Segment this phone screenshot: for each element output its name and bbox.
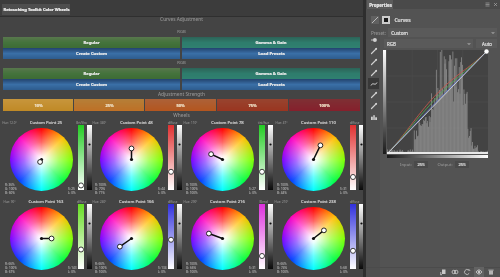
button[interactable]: Hue: 47° bbox=[272, 118, 363, 197]
staticText: G: 74% bbox=[277, 266, 287, 270]
staticText: Hue: 210° bbox=[273, 200, 290, 204]
button[interactable]: Retouching Toolkit Color Wheels bbox=[2, 4, 70, 15]
staticText: G: 66% bbox=[186, 266, 196, 270]
staticText: Custom bbox=[391, 30, 408, 36]
button[interactable]: 75% bbox=[217, 99, 288, 111]
staticText: diffuse bbox=[347, 200, 362, 204]
staticText: 25% bbox=[105, 103, 114, 108]
staticText: diffuse bbox=[347, 121, 362, 125]
button[interactable]: 10% bbox=[3, 99, 73, 111]
button[interactable]: Hue: 210° bbox=[272, 197, 363, 277]
staticText: R: 100% bbox=[186, 183, 198, 187]
button[interactable]: Load Presets bbox=[182, 79, 360, 90]
button[interactable]: Hue: 240° bbox=[90, 197, 181, 277]
staticText: B: 60% bbox=[5, 191, 15, 195]
staticText: Regular bbox=[83, 40, 100, 46]
staticText: 75% bbox=[248, 103, 257, 108]
staticText: Custom Point 25 bbox=[18, 120, 74, 126]
staticText: G: 100% bbox=[5, 266, 17, 270]
staticText: Wheels bbox=[0, 112, 363, 119]
staticText: G: 100% bbox=[5, 187, 17, 191]
staticText: Preset: bbox=[371, 30, 388, 36]
staticText: S: 25 bbox=[68, 187, 75, 191]
staticText: RGB bbox=[0, 29, 363, 35]
staticText: Hue: 90° bbox=[1, 200, 18, 204]
staticText: Regular bbox=[83, 71, 100, 77]
button[interactable]: Create Custom bbox=[3, 48, 180, 59]
button[interactable]: Histogram bbox=[368, 111, 379, 122]
staticText: Custom Point 166 bbox=[108, 199, 165, 205]
button[interactable]: Grid bbox=[368, 100, 379, 111]
staticText: 255 bbox=[458, 162, 466, 168]
button[interactable]: Auto bbox=[476, 39, 497, 48]
staticText: tint/hue bbox=[256, 121, 271, 125]
button[interactable]: White point bbox=[368, 56, 379, 67]
staticText: RGB bbox=[387, 41, 396, 47]
staticText: Custom Point 163 bbox=[18, 199, 74, 205]
button[interactable]: Hue: 110° bbox=[181, 118, 272, 197]
staticText: Hue: 12.0° bbox=[1, 121, 18, 125]
staticText: R: 66% bbox=[277, 262, 287, 266]
button[interactable]: Regular bbox=[3, 37, 180, 48]
staticText: R: 100% bbox=[95, 183, 107, 187]
staticText: L: 0% bbox=[249, 270, 257, 274]
staticText: 10% bbox=[34, 103, 43, 108]
staticText: B: 100% bbox=[186, 270, 198, 274]
button[interactable]: Hue: 340° bbox=[90, 118, 181, 197]
staticText: 100% bbox=[319, 103, 330, 108]
button[interactable]: Hue: 90° bbox=[0, 197, 90, 277]
button[interactable]: Gamma & Gain bbox=[182, 37, 360, 48]
button[interactable]: Hue: 12.0° bbox=[0, 118, 90, 197]
button[interactable]: 25% bbox=[74, 99, 144, 111]
staticText: R: 36% bbox=[5, 183, 15, 187]
staticText: B: 67% bbox=[5, 270, 15, 274]
button[interactable]: 50% bbox=[145, 99, 216, 111]
staticText: L: 0% bbox=[68, 270, 76, 274]
button[interactable]: 100% bbox=[289, 99, 360, 111]
staticText: S: 143 bbox=[68, 266, 77, 270]
button[interactable]: Regular bbox=[3, 68, 180, 79]
staticText: Hue: 47° bbox=[273, 121, 290, 125]
staticText: S: 68 bbox=[340, 266, 347, 270]
staticText: diffuse bbox=[74, 200, 89, 204]
staticText: Properties bbox=[369, 2, 392, 8]
staticText: Auto bbox=[482, 41, 492, 47]
staticText: Curves bbox=[394, 17, 411, 24]
button[interactable]: Custom bbox=[388, 28, 497, 37]
button[interactable]: Gamma & Gain bbox=[182, 68, 360, 79]
button[interactable]: Collapse bbox=[493, 2, 498, 7]
staticText: R: 100% bbox=[277, 183, 289, 187]
staticText: Hue: 240° bbox=[91, 200, 108, 204]
button[interactable]: Panel menu bbox=[485, 2, 490, 7]
staticText: B: 100% bbox=[95, 270, 107, 274]
button[interactable]: Eyedropper bbox=[368, 45, 379, 56]
staticText: Custom Point 48 bbox=[108, 120, 165, 126]
staticText: R: 66% bbox=[5, 262, 15, 266]
staticText: Gamma & Gain bbox=[255, 40, 287, 46]
button[interactable]: Curve pencil bbox=[368, 78, 379, 89]
staticText: L: 0% bbox=[158, 270, 166, 274]
button[interactable]: Properties bbox=[367, 0, 393, 9]
staticText: L: 0% bbox=[340, 270, 348, 274]
button[interactable]: Visibility bbox=[474, 267, 484, 277]
button[interactable]: Reset bbox=[462, 267, 472, 277]
button[interactable]: Load Presets bbox=[182, 48, 360, 59]
staticText: S: 31 bbox=[340, 187, 347, 191]
button[interactable]: Delete bbox=[486, 267, 496, 277]
staticText: G: 100% bbox=[277, 187, 289, 191]
button[interactable]: Black point bbox=[368, 67, 379, 78]
staticText: Blend bbox=[256, 200, 271, 204]
button[interactable]: Create Custom bbox=[3, 79, 180, 90]
staticText: Custom Point 238 bbox=[290, 199, 347, 205]
staticText: G: 100% bbox=[95, 266, 107, 270]
staticText: L: 0% bbox=[249, 191, 257, 195]
staticText: Create Custom bbox=[76, 51, 107, 57]
button[interactable]: Toggle mask bbox=[450, 267, 460, 277]
button[interactable]: Hue: 290° bbox=[181, 197, 272, 277]
staticText: S: 27 bbox=[249, 187, 256, 191]
button[interactable]: RGB bbox=[384, 39, 473, 48]
button[interactable]: Smooth bbox=[368, 89, 379, 100]
staticText: Adjustment Strength bbox=[0, 91, 363, 98]
button[interactable]: Clip to layer bbox=[438, 267, 448, 277]
button[interactable]: Sampler bbox=[368, 34, 379, 45]
